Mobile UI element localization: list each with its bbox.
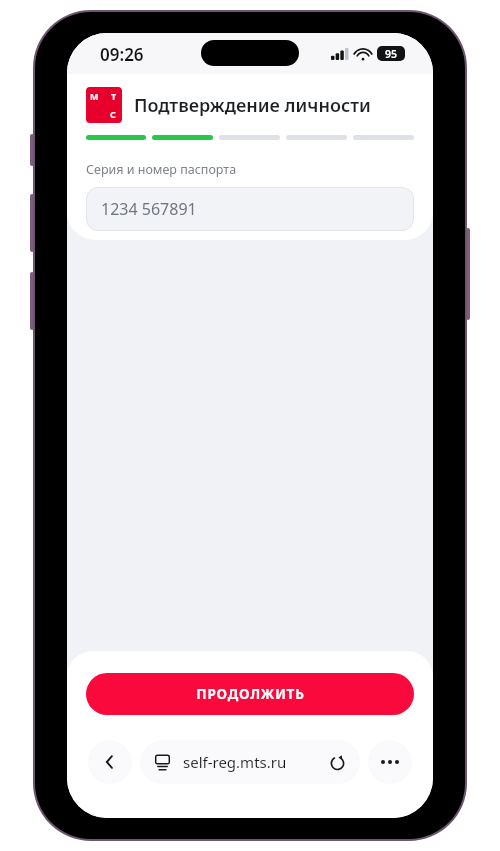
staticText: 09:26 bbox=[100, 43, 144, 66]
staticText: С bbox=[110, 108, 116, 120]
staticText: М bbox=[90, 90, 99, 102]
staticText: Т bbox=[111, 90, 117, 102]
staticText: self-reg.mts.ru bbox=[183, 752, 321, 772]
staticText: 1234 567891 bbox=[101, 198, 197, 220]
button[interactable]: ПРОДОЛЖИТЬ bbox=[86, 673, 414, 715]
button[interactable]: More bbox=[368, 740, 412, 784]
staticText: Серия и номер паспорта bbox=[86, 161, 237, 178]
staticText: ПРОДОЛЖИТЬ bbox=[196, 685, 305, 703]
button[interactable]: Back bbox=[88, 740, 132, 784]
staticText: Подтверждение личности bbox=[134, 93, 371, 118]
staticText: 95 bbox=[385, 47, 398, 61]
button[interactable]: self-reg.mts.ru bbox=[140, 740, 360, 784]
button[interactable]: 1234 567891 bbox=[86, 187, 414, 231]
